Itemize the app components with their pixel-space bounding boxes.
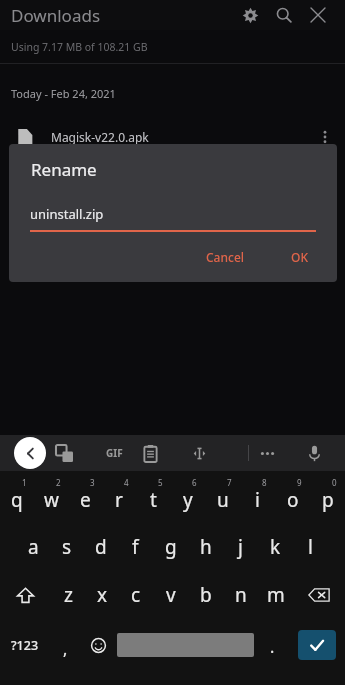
button[interactable]: m [258,571,293,619]
button[interactable]: More options [309,121,341,153]
button[interactable]: Enter [298,630,336,660]
button[interactable]: Emoji [82,619,115,671]
staticText: l [308,534,313,560]
staticText: m [267,582,285,608]
button[interactable]: , [49,619,82,671]
staticText: q [11,487,23,513]
button[interactable]: d [84,523,118,571]
staticText: z [64,582,73,608]
button[interactable]: Close [301,0,335,30]
button[interactable]: y [170,471,205,523]
button[interactable]: Settings [233,0,267,30]
button[interactable]: g [153,523,188,571]
staticText: j [238,534,243,560]
staticText: n [235,582,247,608]
staticText: e [80,487,91,513]
button[interactable]: . [256,619,289,671]
button[interactable]: f [118,523,153,571]
staticText: o [287,487,299,513]
button[interactable]: u [205,471,240,523]
staticText: 3 [90,477,95,488]
staticText: 7 [227,477,232,488]
button[interactable]: t [136,471,170,523]
staticText: 2 [56,477,61,488]
staticText: 6 [192,477,197,488]
staticText: b [200,582,212,608]
button[interactable]: p [310,471,345,523]
staticText: uninstall.zip [30,205,104,223]
button[interactable]: e [68,471,102,523]
button[interactable]: o [275,471,310,523]
staticText: w [44,487,59,513]
button[interactable]: l [293,523,328,571]
button[interactable]: Clipboard [134,437,166,469]
staticText: GIF [106,446,123,460]
button[interactable]: s [50,523,84,571]
button[interactable]: k [258,523,293,571]
button[interactable]: Cancel [195,242,256,272]
staticText: x [97,582,108,608]
staticText: y [183,487,193,513]
staticText: 5 [158,477,163,488]
staticText: 9 [297,477,302,488]
button[interactable]: j [223,523,258,571]
staticText: ?123 [11,637,39,654]
staticText: OK [291,249,308,265]
button[interactable]: z [51,571,85,619]
staticText: f [132,534,139,560]
button[interactable]: Back [14,437,46,469]
button[interactable]: a [16,523,50,571]
staticText: Magisk-v22.0.apk [51,129,149,145]
button[interactable]: Search [267,0,301,30]
staticText: Downloads [11,4,101,27]
button[interactable]: ?123 [0,619,49,671]
button[interactable]: Shift [0,571,51,619]
button[interactable]: More [251,437,283,469]
staticText: Rename [31,158,97,181]
button[interactable]: q [0,471,34,523]
staticText: Cancel [206,249,245,265]
button[interactable]: h [188,523,223,571]
staticText: k [270,534,281,560]
button[interactable]: w [34,471,68,523]
staticText: g [165,534,177,560]
staticText: v [166,582,176,608]
staticText: 8 [262,477,267,488]
button[interactable]: b [188,571,223,619]
button[interactable]: Space [115,619,256,671]
button[interactable]: v [153,571,188,619]
button[interactable]: x [85,571,119,619]
staticText: p [322,487,334,513]
staticText: 4 [124,477,129,488]
staticText: s [62,534,72,560]
staticText: 0 [332,477,337,488]
staticText: h [200,534,212,560]
button[interactable]: Magisk-v22.0.apk [0,114,345,160]
button[interactable]: c [119,571,153,619]
button[interactable]: i [240,471,275,523]
staticText: a [28,534,39,560]
staticText: , [63,638,68,660]
button[interactable]: GIF [98,437,130,469]
button[interactable]: Text editing [183,437,215,469]
button[interactable]: n [223,571,258,619]
button[interactable]: Backspace [293,571,345,619]
staticText: u [217,487,229,513]
staticText: . [270,636,275,658]
staticText: t [150,487,157,513]
staticText: Today - Feb 24, 2021 [11,86,116,101]
button[interactable]: OK [280,242,319,272]
staticText: i [255,487,260,513]
button[interactable]: Voice input [298,437,330,469]
staticText: Using 7.17 MB of 108.21 GB [11,40,148,54]
staticText: d [95,534,107,560]
staticText: c [131,582,141,608]
button[interactable]: Translate [48,437,80,469]
staticText: 1 [22,477,27,488]
staticText: r [115,487,123,513]
button[interactable]: r [102,471,136,523]
